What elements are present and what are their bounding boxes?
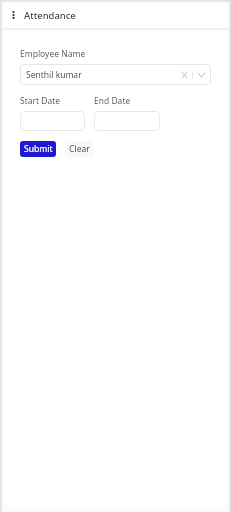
staticText: Attendance: [24, 9, 76, 22]
staticText: Start Date: [20, 95, 61, 107]
button[interactable]: Submit: [20, 141, 56, 157]
button[interactable]: Open dropdown: [193, 65, 210, 84]
button[interactable]: Clear: [65, 141, 94, 157]
button[interactable]: Senthil kumar: [20, 64, 211, 85]
staticText: Submit: [24, 143, 53, 155]
button[interactable]: Clear selection: [177, 65, 192, 84]
button[interactable]: Start date: [20, 111, 85, 131]
staticText: Senthil kumar: [26, 69, 82, 81]
staticText: Clear: [69, 143, 90, 155]
button[interactable]: End date: [94, 111, 160, 131]
button[interactable]: More options: [2, 4, 24, 26]
staticText: End Date: [94, 95, 131, 107]
staticText: Employee Name: [20, 48, 86, 60]
